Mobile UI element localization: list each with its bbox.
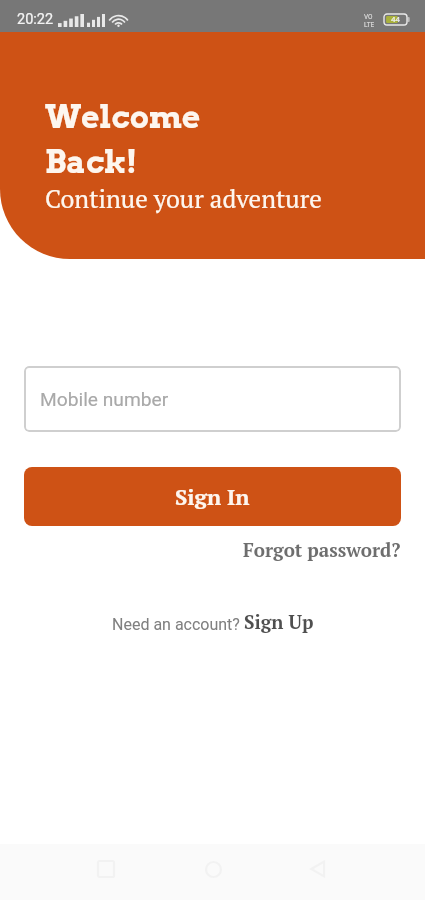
staticText: Mobile number xyxy=(40,388,169,411)
staticText: 20:22 xyxy=(17,11,54,28)
button[interactable]: Mobile number xyxy=(24,366,401,432)
staticText: 44 xyxy=(391,15,400,24)
staticText: Need an account? xyxy=(112,615,244,634)
staticText: LTE xyxy=(364,21,375,29)
button[interactable]: Forgot password? xyxy=(239,534,405,565)
staticText: VO xyxy=(364,13,373,21)
staticText: Welcome Back! xyxy=(45,98,201,181)
staticText: Continue your adventure xyxy=(45,182,322,215)
staticText: Sign Up xyxy=(244,609,314,634)
button[interactable]: Sign In xyxy=(24,467,401,526)
staticText: Forgot password? xyxy=(243,537,401,562)
staticText: Sign In xyxy=(175,482,250,511)
button[interactable]: Need an account? xyxy=(108,606,318,637)
